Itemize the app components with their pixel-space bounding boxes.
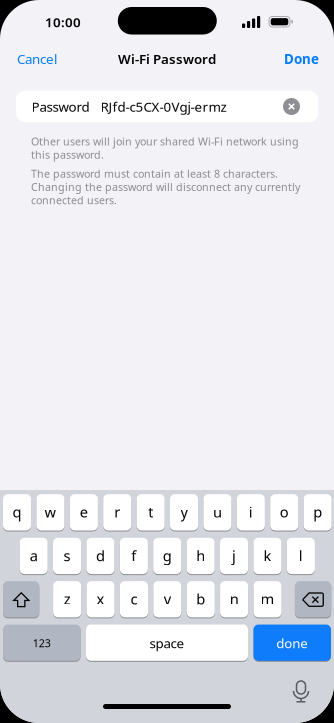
staticText: n [230, 589, 239, 608]
button[interactable]: Done [284, 50, 319, 68]
staticText: RJfd-c5CX-0Vgj-ermz [100, 98, 226, 115]
button[interactable]: h [187, 538, 215, 575]
staticText: done [276, 634, 308, 652]
button[interactable]: space [86, 625, 248, 661]
button[interactable]: Dictation [288, 679, 314, 705]
button[interactable]: Clear text [283, 98, 300, 115]
button[interactable]: p [304, 495, 332, 531]
staticText: f [131, 546, 136, 565]
staticText: h [196, 546, 205, 565]
staticText: connected users. [31, 193, 117, 207]
staticText: k [263, 546, 271, 565]
button[interactable]: a [20, 538, 48, 575]
staticText: space [149, 634, 184, 652]
staticText: 123 [33, 636, 51, 650]
button[interactable]: r [103, 495, 131, 531]
button[interactable]: l [287, 538, 315, 575]
staticText: o [280, 502, 289, 522]
staticText: s [63, 546, 70, 565]
button[interactable]: j [220, 538, 248, 575]
staticText: c [130, 589, 137, 608]
button[interactable]: u [203, 495, 231, 531]
staticText: a [30, 546, 38, 565]
button[interactable]: c [120, 582, 148, 618]
staticText: t [148, 502, 153, 522]
button[interactable]: e [70, 495, 98, 531]
staticText: Done [284, 50, 319, 68]
staticText: y [181, 502, 188, 522]
button[interactable]: Cancel [17, 50, 57, 68]
button[interactable]: k [253, 538, 281, 575]
button[interactable]: m [253, 582, 282, 618]
staticText: Password [32, 98, 90, 115]
button[interactable]: t [137, 495, 165, 531]
staticText: x [96, 589, 104, 608]
button[interactable]: i [237, 495, 265, 531]
staticText: Cancel [17, 50, 57, 68]
button[interactable]: g [153, 538, 181, 575]
button[interactable]: Delete [295, 582, 331, 618]
staticText: j [232, 546, 236, 565]
staticText: r [114, 502, 120, 522]
button[interactable]: d [86, 538, 114, 575]
button[interactable]: x [86, 582, 115, 618]
staticText: v [164, 589, 171, 608]
staticText: z [64, 589, 71, 608]
staticText: q [13, 502, 22, 522]
staticText: b [196, 589, 205, 608]
button[interactable]: w [36, 495, 64, 531]
staticText: Wi-Fi Password [118, 50, 216, 68]
button[interactable]: z [53, 582, 81, 618]
button[interactable]: v [153, 582, 181, 618]
button[interactable]: o [270, 495, 298, 531]
button[interactable]: 123 [3, 625, 80, 661]
staticText: u [213, 502, 222, 522]
button[interactable]: n [220, 582, 248, 618]
staticText: this password. [31, 148, 104, 162]
button[interactable]: y [170, 495, 198, 531]
button[interactable]: b [187, 582, 215, 618]
staticText: 10:00 [45, 13, 81, 31]
staticText: g [163, 546, 172, 565]
staticText: l [299, 546, 303, 565]
button[interactable]: Shift [3, 582, 39, 618]
staticText: Changing the password will disconnect an… [31, 180, 300, 194]
staticText: i [249, 502, 253, 522]
button[interactable]: s [53, 538, 81, 575]
staticText: w [44, 502, 56, 522]
button[interactable]: done [253, 625, 331, 661]
button[interactable]: q [3, 495, 31, 531]
staticText: The password must contain at least 8 cha… [31, 166, 278, 181]
staticText: e [80, 502, 88, 522]
staticText: Other users will join your shared Wi-Fi … [31, 134, 299, 148]
staticText: p [313, 502, 322, 522]
staticText: d [96, 546, 105, 565]
button[interactable]: f [120, 538, 148, 575]
staticText: m [260, 589, 274, 608]
